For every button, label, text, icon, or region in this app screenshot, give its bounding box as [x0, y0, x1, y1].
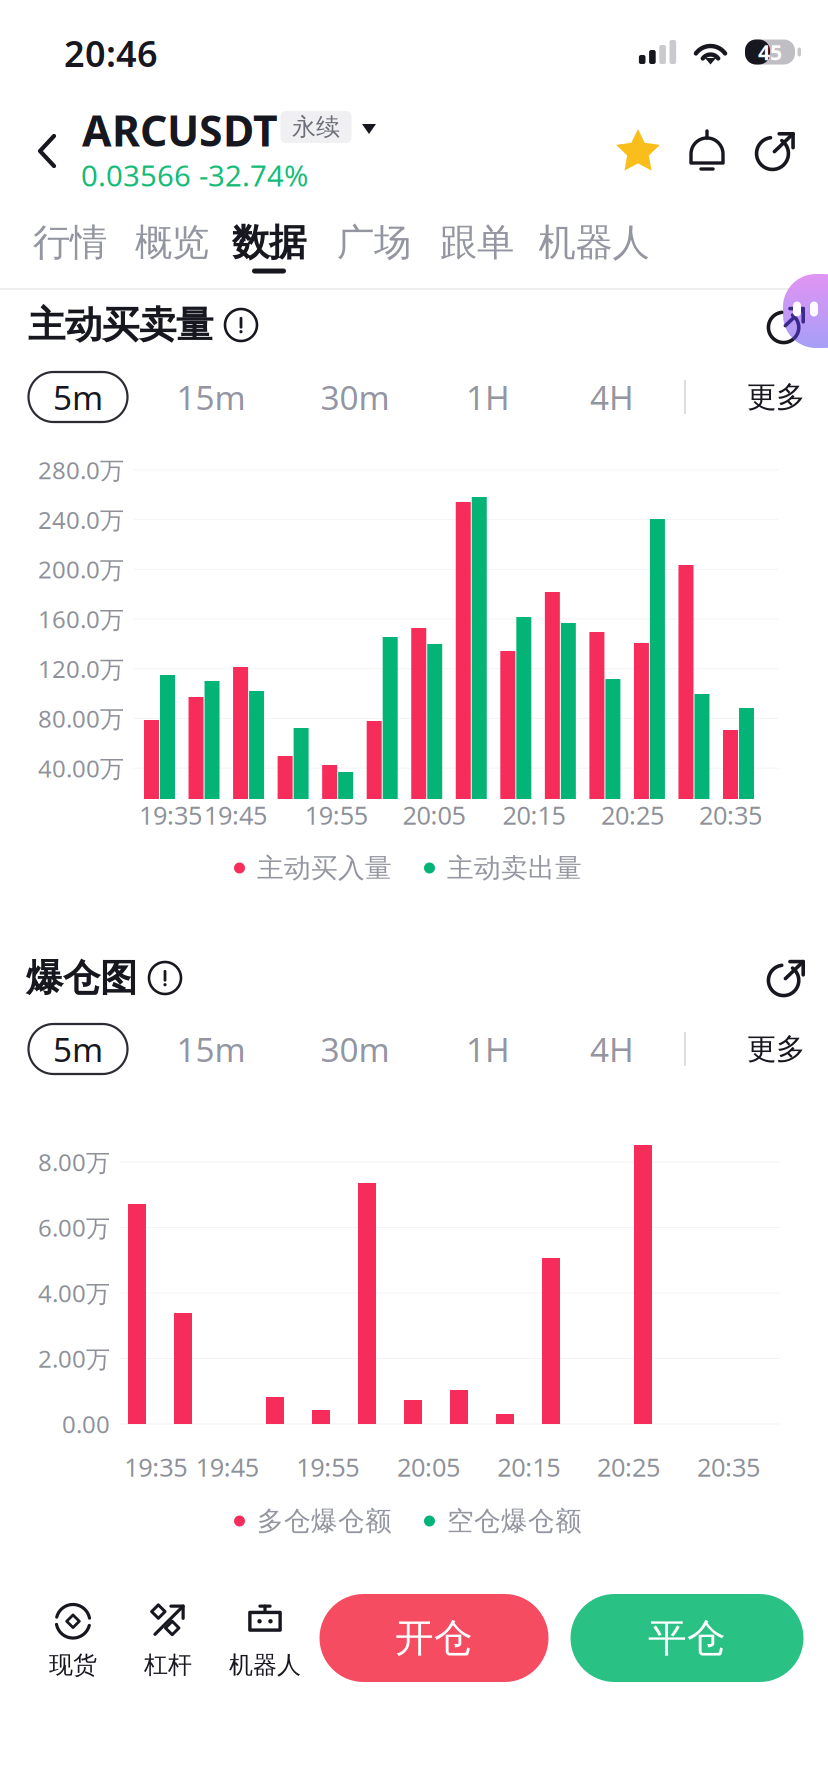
staticText: 19:45	[196, 1450, 259, 1484]
staticText: 120.0万	[38, 653, 124, 685]
staticText: 空仓爆仓额	[447, 1505, 582, 1537]
staticText: 更多	[747, 1031, 805, 1067]
staticText: 现货	[49, 1650, 97, 1680]
button[interactable]: Favourite	[604, 117, 672, 185]
staticText: 20:15	[502, 798, 565, 832]
button[interactable]: 更多	[726, 372, 826, 422]
staticText: 80.00万	[38, 702, 124, 734]
staticText: 8.00万	[38, 1146, 110, 1178]
staticText: 主动卖出量	[447, 852, 582, 884]
staticText: 5m	[53, 1027, 103, 1071]
button[interactable]: 1H	[438, 1024, 538, 1074]
staticText: 20:46	[64, 29, 158, 77]
staticText: 45	[758, 38, 782, 66]
staticText: 4.00万	[38, 1277, 110, 1309]
staticText: 40.00万	[38, 752, 124, 784]
staticText: 概览	[135, 220, 209, 265]
staticText: 4H	[590, 1027, 634, 1071]
button[interactable]: 5m	[28, 372, 127, 422]
staticText: 15m	[176, 1027, 245, 1071]
button[interactable]: Price alert	[673, 117, 741, 185]
staticText: 19:45	[204, 798, 267, 832]
button[interactable]: Share	[741, 117, 809, 185]
button[interactable]: 更多	[726, 1024, 826, 1074]
staticText: 240.0万	[38, 504, 124, 536]
staticText: 160.0万	[38, 603, 124, 635]
staticText: 30m	[320, 375, 389, 419]
button[interactable]: 平仓	[570, 1594, 803, 1682]
button[interactable]: 行情	[15, 214, 125, 280]
button[interactable]: 15m	[161, 1024, 261, 1074]
staticText: 19:55	[305, 798, 368, 832]
staticText: 6.00万	[38, 1212, 110, 1243]
button[interactable]: 开仓	[319, 1594, 548, 1682]
staticText: 20:25	[601, 798, 664, 832]
staticText: 广场	[337, 220, 411, 265]
button[interactable]: 跟单	[422, 214, 532, 280]
staticText: 开仓	[395, 1614, 473, 1662]
staticText: 20:05	[403, 798, 466, 832]
staticText: 主动买入量	[257, 852, 392, 884]
staticText: 1H	[466, 1027, 510, 1071]
staticText: 30m	[320, 1027, 389, 1071]
staticText: 机器人	[538, 220, 649, 265]
staticText: 爆仓图	[26, 955, 137, 1001]
button[interactable]: 机器人	[523, 214, 665, 280]
button[interactable]: 4H	[562, 372, 662, 422]
button[interactable]: Open liquidation chart	[752, 944, 820, 1012]
staticText: ARCUSDT	[82, 102, 278, 158]
staticText: 280.0万	[38, 454, 124, 486]
staticText: 19:35	[139, 798, 202, 832]
staticText: 平仓	[648, 1614, 726, 1662]
button[interactable]: Open taker volume chart	[752, 291, 820, 359]
staticText: 20:05	[397, 1450, 460, 1484]
staticText: 跟单	[440, 220, 514, 265]
button[interactable]: 杠杆	[108, 1594, 228, 1686]
staticText: 更多	[747, 379, 805, 415]
staticText: 20:35	[699, 798, 762, 832]
staticText: 主动买卖量	[28, 302, 213, 348]
staticText: 15m	[176, 375, 245, 419]
staticText: 永续	[292, 112, 340, 142]
staticText: 20:15	[497, 1450, 560, 1484]
button[interactable]: 15m	[161, 372, 261, 422]
staticText: 19:35	[124, 1450, 187, 1484]
staticText: 20:25	[597, 1450, 660, 1484]
button[interactable]: 5m	[28, 1024, 127, 1074]
staticText: 4H	[590, 375, 634, 419]
staticText: 0.00	[62, 1408, 110, 1440]
staticText: 5m	[53, 375, 103, 419]
button[interactable]: 广场	[319, 214, 429, 280]
button[interactable]: 概览	[117, 214, 227, 280]
button[interactable]: 机器人	[205, 1594, 325, 1686]
staticText: 1H	[466, 375, 510, 419]
button[interactable]: 30m	[305, 1024, 405, 1074]
staticText: 机器人	[229, 1650, 301, 1680]
staticText: 杠杆	[144, 1650, 192, 1680]
staticText: 200.0万	[38, 553, 124, 585]
button[interactable]: 30m	[305, 372, 405, 422]
button[interactable]: 现货	[13, 1594, 133, 1686]
button[interactable]: 数据	[214, 214, 324, 280]
staticText: 行情	[33, 220, 107, 265]
button[interactable]: 4H	[562, 1024, 662, 1074]
staticText: 2.00万	[38, 1343, 110, 1374]
staticText: 0.03566 -32.74%	[81, 155, 308, 194]
button[interactable]: Back	[15, 113, 81, 189]
staticText: 多仓爆仓额	[257, 1505, 392, 1537]
button[interactable]: 1H	[438, 372, 538, 422]
staticText: 20:35	[697, 1450, 760, 1484]
staticText: 19:55	[296, 1450, 359, 1484]
staticText: 数据	[232, 220, 306, 265]
button[interactable]: AI assistant	[783, 274, 828, 348]
